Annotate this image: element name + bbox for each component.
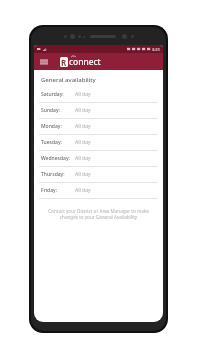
staticText: Tuesday:: [41, 139, 75, 146]
staticText: 3:31: [152, 47, 160, 52]
staticText: Friday:: [41, 187, 75, 194]
staticText: Thursday:: [41, 171, 75, 178]
button[interactable]: Saturday:: [34, 87, 163, 103]
button[interactable]: Wednesday:: [34, 151, 163, 167]
staticText: All day: [75, 123, 91, 130]
staticText: R: [61, 57, 67, 67]
staticText: connect: [69, 56, 101, 68]
staticText: All day: [75, 171, 91, 178]
staticText: All day: [75, 91, 91, 98]
staticText: Wednesday:: [41, 155, 75, 162]
button[interactable]: Thursday:: [34, 167, 163, 183]
staticText: Saturday:: [41, 91, 75, 98]
staticText: All day: [75, 139, 91, 146]
button[interactable]: Sunday:: [34, 103, 163, 119]
staticText: General availability: [41, 76, 96, 84]
button[interactable]: Monday:: [34, 119, 163, 135]
staticText: Contact your District or Area Manager to…: [44, 208, 153, 221]
staticText: Monday:: [41, 123, 75, 130]
staticText: All day: [75, 187, 91, 194]
staticText: Sunday:: [41, 107, 75, 114]
staticText: All day: [75, 155, 91, 162]
button[interactable]: Tuesday:: [34, 135, 163, 151]
button[interactable]: R: [60, 56, 101, 68]
staticText: All day: [75, 107, 91, 114]
button[interactable]: Open navigation menu: [38, 56, 49, 67]
button[interactable]: Friday:: [34, 183, 163, 199]
